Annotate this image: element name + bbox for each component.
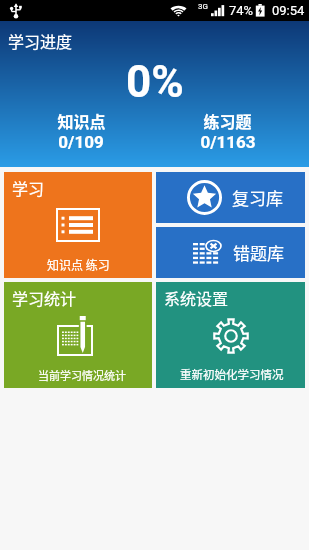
staticText: 学习	[12, 176, 45, 199]
staticText: 知识点	[57, 109, 106, 132]
staticText: 学习进度	[8, 29, 73, 52]
staticText: 0%	[126, 56, 184, 108]
staticText: 当前学习情况统计	[38, 367, 126, 383]
staticText: 错题库	[233, 240, 284, 265]
staticText: 学习统计	[12, 286, 77, 309]
staticText: 3G	[198, 2, 208, 11]
button[interactable]: 错题库	[156, 227, 305, 278]
staticText: 0/1163	[200, 132, 256, 152]
button[interactable]: 系统设置	[156, 282, 305, 388]
staticText: 重新初始化学习情况	[180, 366, 284, 383]
staticText: 练习题	[203, 109, 252, 132]
button[interactable]: 学习	[4, 172, 152, 278]
staticText: 知识点 练习	[47, 256, 110, 273]
staticText: 09:54	[272, 3, 305, 18]
staticText: 复习库	[232, 185, 283, 210]
button[interactable]: 学习统计	[4, 282, 152, 388]
staticText: 系统设置	[164, 286, 229, 309]
staticText: 74%	[229, 3, 254, 18]
staticText: 0/109	[58, 132, 104, 152]
button[interactable]: 复习库	[156, 172, 305, 223]
